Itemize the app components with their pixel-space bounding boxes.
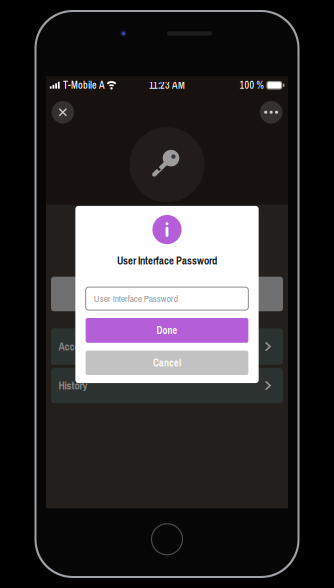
button[interactable]: History bbox=[51, 368, 283, 403]
button[interactable]: Cancel bbox=[86, 351, 248, 375]
button[interactable]: Done bbox=[86, 318, 248, 343]
staticText: Done bbox=[156, 324, 177, 337]
staticText: History bbox=[58, 378, 87, 393]
staticText: User Interface Password bbox=[94, 292, 178, 305]
staticText: Cancel bbox=[153, 356, 181, 370]
button[interactable]: Account bbox=[51, 328, 283, 365]
button[interactable]: Close bbox=[52, 101, 74, 123]
staticText: T-Mobile A bbox=[63, 78, 105, 92]
staticText: 11:23 AM bbox=[149, 78, 185, 92]
staticText: User Interface Password bbox=[117, 253, 217, 268]
button[interactable]: More options bbox=[260, 101, 282, 123]
staticText: Account bbox=[58, 339, 92, 354]
staticText: 100 % bbox=[239, 78, 263, 92]
